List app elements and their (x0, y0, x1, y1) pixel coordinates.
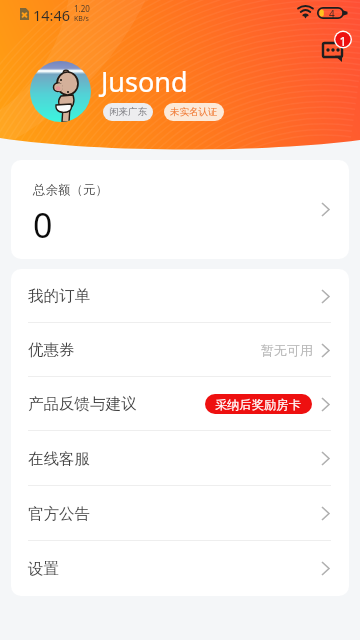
button[interactable]: Messages (313, 30, 357, 74)
staticText: 总余额（元） (33, 182, 108, 198)
staticText: 官方公告 (28, 504, 90, 524)
staticText: 1.20 (74, 3, 90, 14)
button[interactable]: 闲来广东 (103, 103, 153, 121)
button[interactable]: 我的订单 (11, 269, 349, 323)
staticText: Jusond (101, 63, 188, 100)
staticText: 未实名认证 (170, 106, 218, 118)
button[interactable]: 优惠券 (11, 323, 349, 377)
staticText: 优惠券 (28, 340, 75, 360)
staticText: 14:46 (33, 5, 71, 25)
button[interactable]: 总余额（元） (11, 160, 349, 259)
staticText: KB/s (74, 14, 89, 24)
staticText: 产品反馈与建议 (28, 394, 137, 414)
staticText: 我的订单 (28, 286, 90, 306)
button[interactable]: 未实名认证 (164, 103, 224, 121)
staticText: 0 (33, 202, 53, 248)
button[interactable]: 设置 (11, 541, 349, 596)
staticText: 闲来广东 (109, 106, 147, 118)
staticText: 设置 (28, 559, 59, 579)
staticText: 采纳后奖励房卡 (215, 397, 302, 412)
staticText: 暂无可用 (261, 342, 313, 358)
button[interactable]: 官方公告 (11, 486, 349, 541)
staticText: 在线客服 (28, 449, 90, 469)
button[interactable]: 产品反馈与建议 (11, 377, 349, 431)
button[interactable]: 在线客服 (11, 431, 349, 486)
staticText: 4 (329, 7, 335, 19)
staticText: 1 (337, 33, 349, 49)
